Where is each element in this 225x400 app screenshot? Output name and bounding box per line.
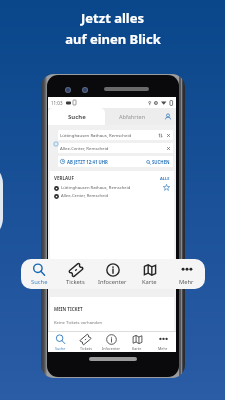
button[interactable]: Karte xyxy=(131,259,168,289)
staticText: Allee-Center, Remscheid xyxy=(61,193,109,199)
staticText: AB JETZT 12:41 UHR xyxy=(67,159,108,165)
staticText: Mehr xyxy=(158,346,168,351)
button[interactable]: SUCHEN xyxy=(146,159,170,165)
button[interactable]: Mehr xyxy=(168,259,205,289)
staticText: ALLE xyxy=(160,176,170,181)
staticText: Lüttinghausen Rathaus, Remscheid xyxy=(61,185,131,191)
button[interactable]: Suche xyxy=(48,332,73,352)
staticText: Jetzt alles xyxy=(81,9,144,27)
staticText: Lüttinghausen Rathaus, Remscheid xyxy=(60,132,132,138)
staticText: Tickets xyxy=(80,346,92,351)
button[interactable]: Abfahrten xyxy=(105,108,159,125)
staticText: Keine Tickets vorhanden xyxy=(54,320,103,326)
staticText: Abfahrten xyxy=(119,113,146,120)
staticText: SUCHEN xyxy=(152,159,170,165)
staticText: Suche xyxy=(68,113,86,121)
button[interactable]: Allee-Center, Remscheid xyxy=(60,143,171,153)
button[interactable]: Infocenter xyxy=(98,332,124,352)
button[interactable]: Favorit xyxy=(163,184,170,191)
button[interactable]: Suche xyxy=(48,108,105,125)
staticText: Allee-Center, Remscheid xyxy=(60,145,109,151)
staticText: Karte xyxy=(142,278,157,286)
staticText: VERLAUF xyxy=(54,175,74,181)
staticText: MEIN TICKET xyxy=(54,306,83,312)
button[interactable]: Suche xyxy=(21,259,57,289)
button[interactable]: Tickets xyxy=(73,332,98,352)
staticText: Infocenter xyxy=(98,278,127,286)
button[interactable]: AB JETZT 12:41 UHR xyxy=(60,156,172,167)
staticText: Suche xyxy=(31,278,48,286)
button[interactable]: Lüttinghausen Rathaus, Remscheid xyxy=(54,185,170,191)
button[interactable]: Lüttinghausen Rathaus, Remscheid xyxy=(60,130,171,140)
staticText: Karte xyxy=(132,346,142,351)
button[interactable]: Infocenter xyxy=(94,259,131,289)
staticText: Infocenter xyxy=(102,346,121,351)
button[interactable]: Allee-Center, Remscheid xyxy=(54,193,170,199)
button[interactable]: Profil xyxy=(159,108,176,125)
staticText: Mehr xyxy=(179,278,194,286)
button[interactable]: Tickets xyxy=(57,259,94,289)
button[interactable]: Karte xyxy=(124,332,150,352)
staticText: Suche xyxy=(55,346,66,351)
staticText: Tickets xyxy=(66,278,85,286)
button[interactable]: Zwischenziel hinzufügen xyxy=(53,141,59,147)
staticText: auf einen Blick xyxy=(65,30,161,48)
button[interactable]: Mehr xyxy=(150,332,176,352)
staticText: 11:03 xyxy=(51,100,63,106)
